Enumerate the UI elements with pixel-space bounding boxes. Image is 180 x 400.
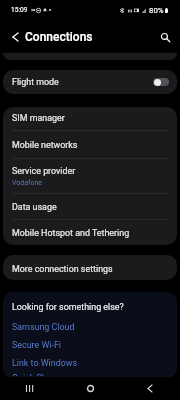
staticText: Looking for something else?	[12, 302, 124, 312]
staticText: 15:09	[11, 6, 28, 14]
staticText: Vodafone	[12, 179, 43, 187]
staticText: Mobile networks	[12, 140, 78, 150]
button[interactable]: Mobile networks	[3, 131, 177, 158]
button[interactable]: Samsung Cloud	[3, 319, 177, 337]
button[interactable]: Home	[60, 377, 120, 400]
button[interactable]: Flight mode	[3, 70, 177, 94]
button[interactable]: Search	[155, 27, 175, 47]
button[interactable]: SIM manager	[3, 107, 177, 130]
button[interactable]: Recent apps	[0, 377, 60, 400]
staticText: Quick Share	[12, 373, 60, 376]
button[interactable]: Mobile Hotspot and Tethering	[3, 220, 177, 245]
staticText: Samsung Cloud	[12, 322, 75, 332]
button[interactable]: Link to Windows	[3, 355, 177, 373]
button[interactable]: Secure Wi-Fi	[3, 337, 177, 355]
button[interactable]: Back	[120, 377, 180, 400]
button[interactable]: Service provider	[3, 159, 177, 193]
staticText: Secure Wi-Fi	[12, 340, 61, 350]
button[interactable]: Flight mode, off	[153, 78, 169, 86]
staticText: Mobile Hotspot and Tethering	[12, 228, 130, 238]
staticText: 80%	[149, 6, 164, 15]
staticText: Connections	[25, 30, 93, 44]
button[interactable]: Navigate up	[4, 26, 26, 48]
staticText: Service provider	[12, 166, 76, 176]
button[interactable]: Quick Share	[3, 373, 177, 378]
button[interactable]: More connection settings	[3, 255, 177, 280]
button[interactable]: Data usage	[3, 194, 177, 219]
staticText: Flight mode	[12, 77, 59, 87]
staticText: More connection settings	[12, 264, 113, 274]
staticText: SIM manager	[12, 113, 65, 123]
staticText: Link to Windows	[12, 358, 77, 368]
staticText: Data usage	[12, 202, 57, 212]
